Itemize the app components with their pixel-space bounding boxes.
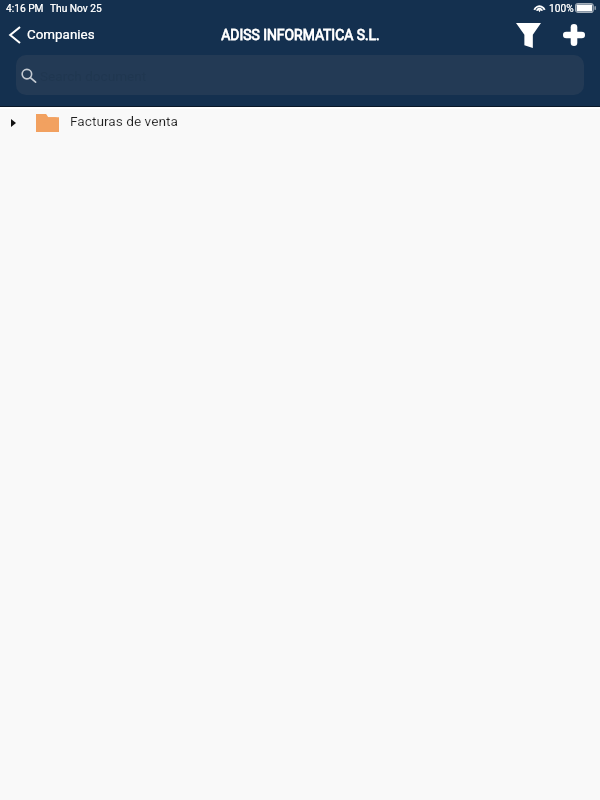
button[interactable]: Facturas de venta [0,103,600,138]
staticText: Facturas de venta [70,113,178,129]
staticText: ADISS INFORMATICA S.L. [221,27,380,43]
staticText: Companies [27,27,95,43]
staticText: Thu Nov 25 [50,3,102,15]
button[interactable]: Search document [16,55,584,95]
button[interactable]: Add [555,20,592,50]
button[interactable]: Filter [510,20,547,50]
staticText: 100% [549,3,574,15]
button[interactable]: Companies [0,25,105,45]
staticText: 4:16 PM [6,3,44,15]
